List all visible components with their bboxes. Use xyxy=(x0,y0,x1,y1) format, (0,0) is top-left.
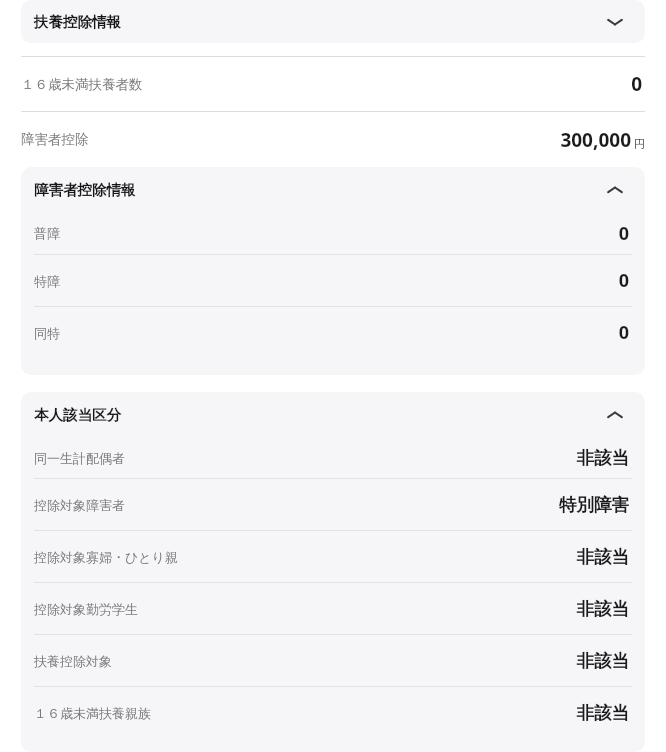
button[interactable]: 控除対象勤労学生 xyxy=(21,583,645,634)
button[interactable]: 障害者控除情報 xyxy=(21,167,645,212)
button[interactable]: 障害者控除 xyxy=(21,112,645,167)
button[interactable]: 本人該当区分 xyxy=(21,392,645,437)
button[interactable]: 同特 xyxy=(21,307,645,358)
other: 折りたたむ xyxy=(598,173,632,207)
staticText: 障害者控除情報 xyxy=(34,181,136,199)
staticText: 控除対象障害者 xyxy=(34,497,125,513)
staticText: 円 xyxy=(634,137,645,151)
staticText: 扶養控除対象 xyxy=(34,653,112,669)
staticText: 0 xyxy=(618,221,629,246)
staticText: 非該当 xyxy=(576,650,629,672)
staticText: １６歳未満扶養親族 xyxy=(34,705,151,721)
staticText: 300,000 xyxy=(560,127,631,153)
staticText: 同一生計配偶者 xyxy=(34,450,125,466)
button[interactable]: 控除対象障害者 xyxy=(21,479,645,530)
staticText: 非該当 xyxy=(576,447,629,469)
staticText: 0 xyxy=(618,268,629,293)
staticText: 控除対象寡婦・ひとり親 xyxy=(34,549,178,565)
staticText: 同特 xyxy=(34,325,60,341)
button[interactable]: 扶養控除情報 xyxy=(21,0,645,43)
button[interactable]: 同一生計配偶者 xyxy=(21,437,645,478)
staticText: 扶養控除情報 xyxy=(34,13,121,31)
staticText: 非該当 xyxy=(576,546,629,568)
button[interactable]: 普障 xyxy=(21,212,645,254)
staticText: 非該当 xyxy=(576,702,629,724)
staticText: 本人該当区分 xyxy=(34,406,121,424)
button[interactable]: 特障 xyxy=(21,255,645,306)
staticText: 特障 xyxy=(34,273,60,289)
staticText: 非該当 xyxy=(576,598,629,620)
button[interactable]: 控除対象寡婦・ひとり親 xyxy=(21,531,645,582)
staticText: 0 xyxy=(618,320,629,345)
other: 展開する xyxy=(598,5,632,39)
other: 折りたたむ xyxy=(598,398,632,432)
staticText: 特別障害 xyxy=(559,494,629,516)
button[interactable]: 扶養控除対象 xyxy=(21,635,645,686)
staticText: 障害者控除 xyxy=(21,131,89,148)
staticText: 普障 xyxy=(34,225,60,241)
button[interactable]: １６歳未満扶養者数 xyxy=(21,57,645,111)
staticText: １６歳未満扶養者数 xyxy=(21,76,143,93)
staticText: 0 xyxy=(631,71,642,97)
staticText: 控除対象勤労学生 xyxy=(34,601,138,617)
button[interactable]: １６歳未満扶養親族 xyxy=(21,687,645,738)
